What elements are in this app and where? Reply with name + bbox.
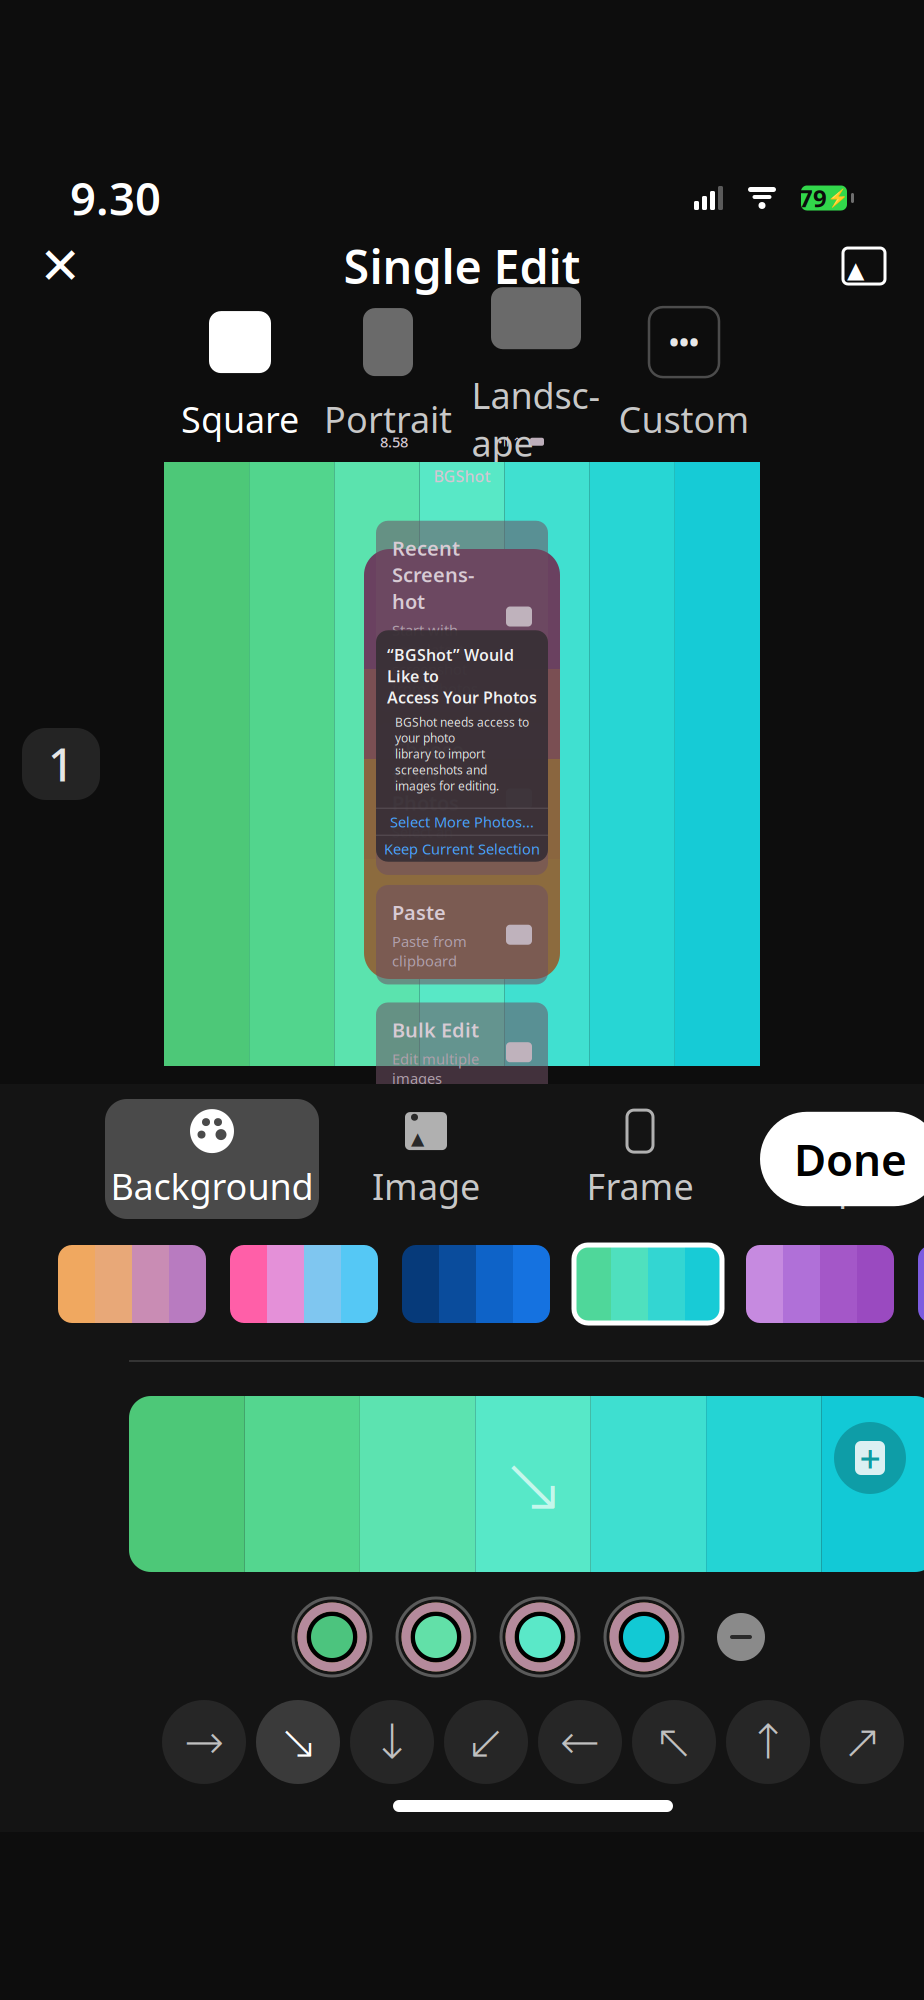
staticText: Select More Photos...	[390, 812, 534, 831]
button[interactable]: Keep Current Selection	[376, 836, 548, 862]
staticText: •••	[669, 324, 699, 360]
staticText: ⚡	[827, 188, 849, 208]
staticText: Custom	[618, 395, 749, 443]
button[interactable]: Color stop	[601, 1594, 687, 1680]
button[interactable]: Background	[105, 1099, 319, 1219]
button[interactable]: Aspect	[747, 1099, 924, 1219]
staticText: Background	[110, 1162, 313, 1210]
button[interactable]: Square	[166, 305, 314, 443]
button[interactable]: Gradient down left	[440, 1696, 532, 1788]
staticText: Start with your latest screenshot from P…	[392, 620, 478, 698]
staticText: Single Edit	[343, 235, 580, 297]
staticText: ↘	[499, 1439, 566, 1529]
button[interactable]: Done	[760, 1112, 924, 1206]
staticText: ▲	[411, 1129, 424, 1148]
staticText: Aspect	[798, 1162, 910, 1210]
button[interactable]: Add color stop	[827, 1415, 913, 1501]
staticText: Frame	[586, 1162, 693, 1210]
staticText: 9.30	[70, 168, 161, 228]
staticText: Choose from Photos	[392, 736, 464, 816]
staticText: Select an image	[392, 822, 453, 861]
staticText: ✕	[39, 237, 81, 295]
button[interactable]: Gradient down	[346, 1696, 438, 1788]
staticText: Landscape	[471, 371, 600, 467]
staticText: Square	[181, 395, 299, 443]
staticText: BGShot	[433, 465, 490, 487]
staticText: Paste from clipboard	[392, 931, 467, 970]
staticText: ↘	[278, 1715, 318, 1769]
staticText: Portrait	[324, 395, 452, 443]
button[interactable]: Background preset	[746, 1245, 894, 1323]
button[interactable]: Frame	[533, 1099, 747, 1219]
button[interactable]: Background preset	[574, 1245, 722, 1323]
staticText: Keep Current Selection	[384, 839, 540, 858]
button[interactable]: Background preset	[402, 1245, 550, 1323]
button[interactable]: Color stop	[497, 1594, 583, 1680]
button[interactable]: Color stop	[393, 1594, 479, 1680]
staticText: +	[859, 1433, 880, 1483]
button[interactable]: Remove color stop	[705, 1601, 777, 1673]
staticText: ↗	[842, 1715, 882, 1769]
button[interactable]: Gradient down right	[252, 1696, 344, 1788]
button[interactable]: Gradient up left	[628, 1696, 720, 1788]
staticText: BGShot needs access to your photo librar…	[395, 714, 529, 794]
staticText: Bulk Edit	[392, 1016, 479, 1043]
button[interactable]: Color stop	[289, 1594, 375, 1680]
staticText: “BGShot” Would Like to Access Your Photo…	[387, 644, 537, 708]
button[interactable]: Portrait	[314, 305, 462, 443]
button[interactable]: •••	[610, 305, 758, 443]
staticText: Done	[794, 1130, 907, 1188]
staticText: 1	[48, 734, 74, 794]
staticText: •ıl ⌃	[498, 434, 522, 450]
staticText: ↖	[654, 1715, 694, 1769]
staticText: 8.58	[380, 432, 408, 451]
staticText: →	[184, 1715, 224, 1769]
staticText: ↓	[372, 1715, 412, 1769]
staticText: ↑	[748, 1715, 788, 1769]
button[interactable]: Gradient left	[534, 1696, 626, 1788]
button[interactable]: Gradient up right	[816, 1696, 908, 1788]
button[interactable]: Background preset	[918, 1245, 924, 1323]
staticText: 79	[799, 182, 827, 214]
staticText: ↙	[466, 1715, 506, 1769]
button[interactable]: Background preset	[58, 1245, 206, 1323]
button[interactable]: Photos	[834, 236, 894, 296]
button[interactable]: Landscape	[462, 281, 610, 467]
staticText: ←	[560, 1715, 600, 1769]
button[interactable]: Background preset	[230, 1245, 378, 1323]
button[interactable]: Close	[30, 236, 90, 296]
staticText: Paste	[392, 899, 446, 926]
button[interactable]: Gradient up	[722, 1696, 814, 1788]
staticText: ▲	[847, 257, 864, 283]
button[interactable]: Select More Photos...	[376, 809, 548, 835]
staticText: Edit multiple images	[392, 1049, 479, 1088]
button[interactable]: Gradient right	[158, 1696, 250, 1788]
staticText: Image	[372, 1162, 480, 1210]
staticText: Recent Screenshot	[392, 535, 474, 614]
button[interactable]: ▲	[319, 1099, 533, 1219]
